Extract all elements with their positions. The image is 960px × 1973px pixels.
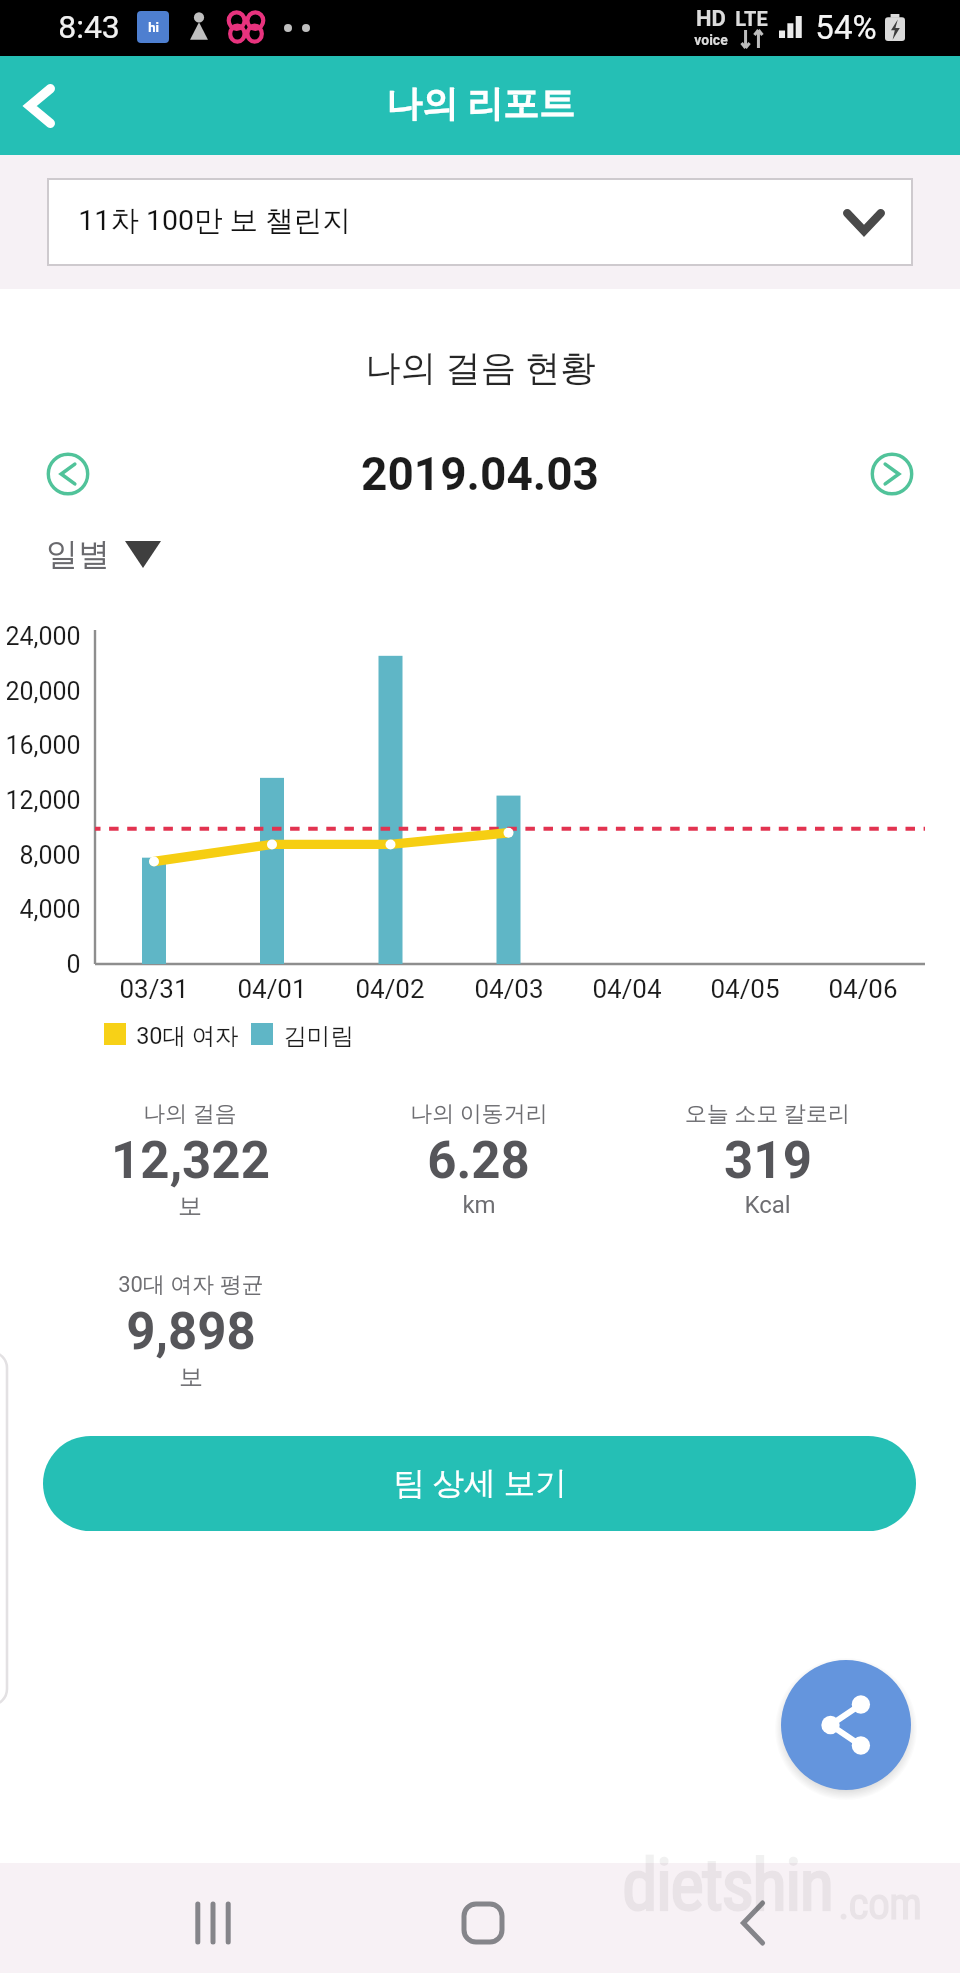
staticText: hi xyxy=(148,20,159,35)
staticText: LTE xyxy=(735,7,768,30)
staticText: 54% xyxy=(815,8,877,47)
staticText: .com xyxy=(838,1878,922,1930)
staticText: 4,000 xyxy=(19,895,81,924)
staticText: 보 xyxy=(178,1191,202,1221)
staticText: 319 xyxy=(724,1131,812,1191)
button[interactable]: Next day xyxy=(869,451,915,497)
staticText: 20,000 xyxy=(5,677,81,706)
staticText: 나의 걸음 현황 xyxy=(365,346,596,391)
staticText: 8,000 xyxy=(19,841,81,870)
staticText: 16,000 xyxy=(5,731,81,760)
staticText: 12,322 xyxy=(111,1131,270,1191)
staticText: 6.28 xyxy=(427,1131,530,1191)
staticText: 나의 리포트 xyxy=(386,81,575,126)
button[interactable]: Share xyxy=(781,1660,911,1790)
staticText: 2019.04.03 xyxy=(361,447,599,501)
staticText: 보 xyxy=(179,1362,203,1392)
staticText: 나의 이동거리 xyxy=(410,1100,548,1128)
staticText: Kcal xyxy=(744,1191,791,1219)
staticText: 03/31 xyxy=(119,974,189,1004)
staticText: 일별 xyxy=(46,534,110,574)
staticText: voice xyxy=(694,32,728,48)
staticText: 9,898 xyxy=(126,1302,256,1362)
staticText: 11차 100만 보 챌린지 xyxy=(78,203,351,239)
staticText: km xyxy=(462,1191,496,1219)
button[interactable]: 일별 xyxy=(46,526,161,582)
staticText: 12,000 xyxy=(5,786,81,815)
staticText: 04/02 xyxy=(355,974,425,1004)
staticText: 24,000 xyxy=(5,622,81,651)
staticText: 나의 걸음 xyxy=(143,1100,237,1128)
staticText: 04/04 xyxy=(592,974,662,1004)
staticText: 8:43 xyxy=(58,8,120,46)
button[interactable]: Back xyxy=(693,1868,813,1973)
button[interactable]: Previous day xyxy=(45,451,91,497)
staticText: 30대 여자 xyxy=(136,1021,239,1047)
button[interactable]: Home xyxy=(423,1868,543,1973)
button[interactable]: 팀 상세 보기 xyxy=(43,1436,916,1531)
staticText: 04/05 xyxy=(710,974,780,1004)
button[interactable]: Back xyxy=(1,67,79,145)
staticText: 김미림 xyxy=(283,1021,354,1047)
staticText: 팀 상세 보기 xyxy=(393,1464,567,1504)
button[interactable]: 11차 100만 보 챌린지 xyxy=(47,178,913,266)
staticText: 30대 여자 평균 xyxy=(118,1271,264,1299)
staticText: HD xyxy=(696,6,726,32)
button[interactable]: Recents xyxy=(153,1868,273,1973)
staticText: 0 xyxy=(66,950,81,979)
staticText: dietshin xyxy=(622,1843,833,1927)
staticText: 04/03 xyxy=(474,974,544,1004)
staticText: 04/01 xyxy=(237,974,307,1004)
staticText: 오늘 소모 칼로리 xyxy=(685,1100,850,1128)
staticText: 04/06 xyxy=(828,974,898,1004)
